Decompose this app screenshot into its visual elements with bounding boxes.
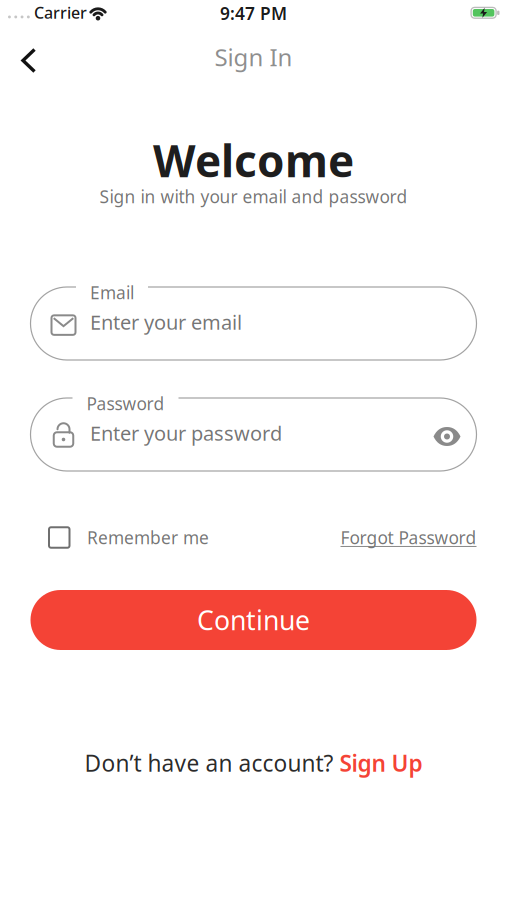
staticText: Remember me [87,526,209,549]
staticText: Sign in with your email and password [99,185,407,208]
button[interactable]: Show password [433,425,476,444]
staticText: Carrier [34,2,87,23]
staticText: 9:47 PM [220,2,287,25]
staticText: Welcome [153,131,354,189]
staticText: Password [86,392,164,415]
staticText: Enter your password [90,420,282,446]
button[interactable]: Remember me [30,526,209,549]
button[interactable]: Continue [30,590,476,650]
staticText: Forgot Password [340,526,476,549]
staticText: Sign Up [339,748,422,778]
staticText: Enter your email [90,309,242,335]
staticText: Don’t have an account? [84,748,339,778]
staticText: Email [90,281,134,304]
button[interactable]: Forgot Password [340,526,476,549]
button[interactable]: Back [0,42,36,79]
staticText: Continue [197,602,310,638]
button[interactable]: Sign Up [339,748,422,778]
staticText: Sign In [214,41,292,73]
